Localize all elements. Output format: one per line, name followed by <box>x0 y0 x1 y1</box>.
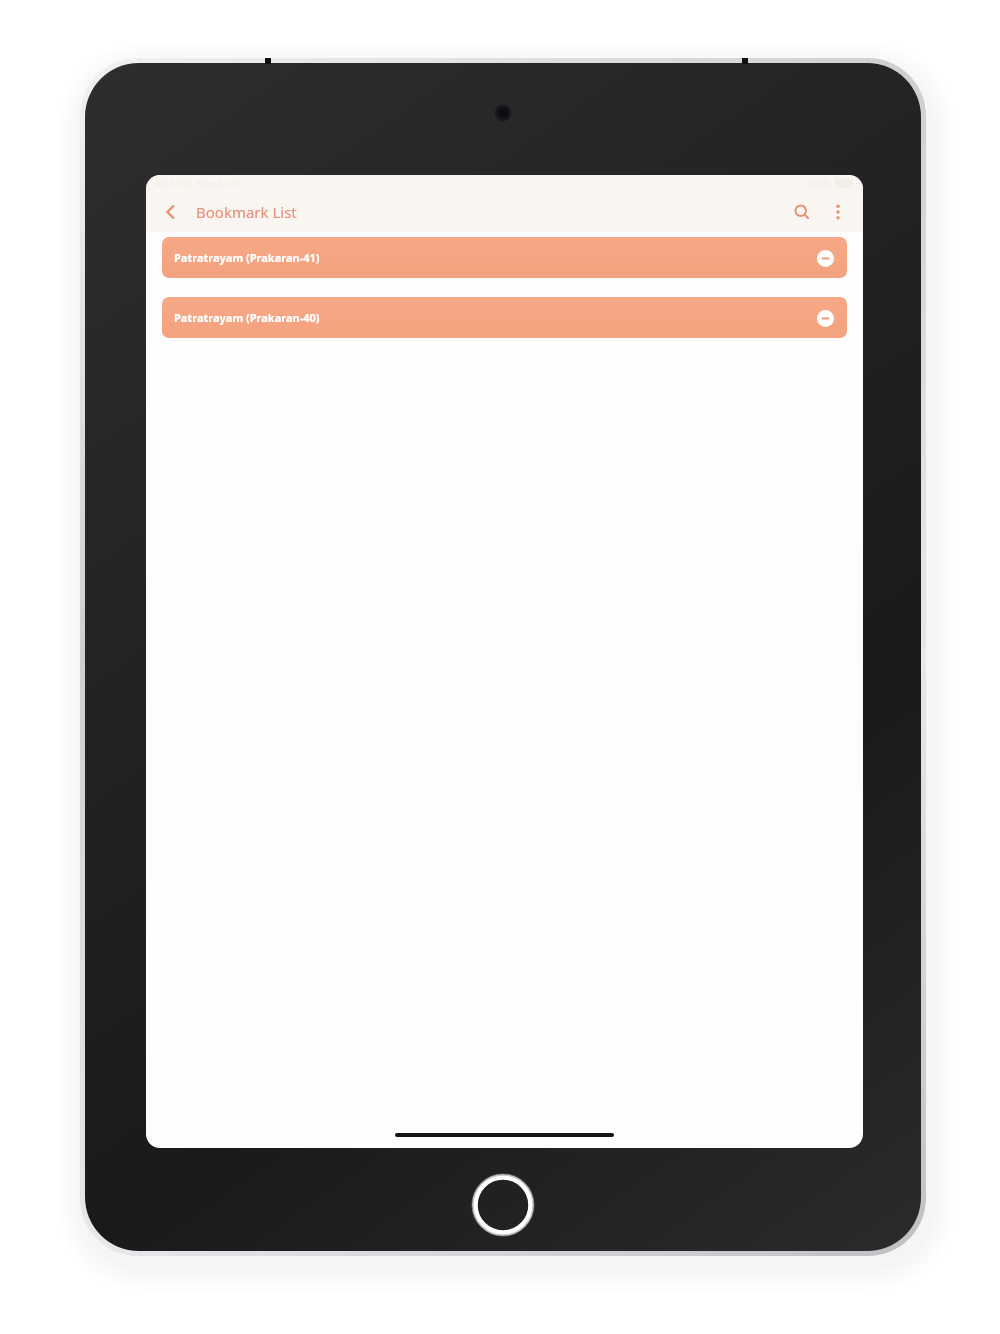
button[interactable]: Remove bookmark <box>813 306 837 330</box>
button[interactable]: Patratrayam (Prakaran-41) <box>162 237 847 278</box>
button[interactable]: Back <box>152 193 190 231</box>
staticText: Patratrayam (Prakaran-41) <box>174 250 320 265</box>
button[interactable]: More options <box>821 195 855 229</box>
staticText: Patratrayam (Prakaran-40) <box>174 310 320 325</box>
button[interactable]: Patratrayam (Prakaran-40) <box>162 297 847 338</box>
other: Home <box>471 1173 535 1237</box>
button[interactable]: Remove bookmark <box>813 246 837 270</box>
staticText: Bookmark List <box>196 202 297 222</box>
button[interactable]: Search <box>783 193 821 231</box>
